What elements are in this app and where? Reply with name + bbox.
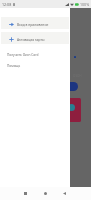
staticText: Вход в приложение bbox=[17, 22, 49, 26]
button[interactable]: Back bbox=[55, 187, 74, 200]
staticText: 12:08 bbox=[2, 2, 12, 7]
staticText: Получить Ozon Card bbox=[7, 53, 39, 57]
staticText: Активация карты bbox=[17, 37, 45, 41]
button[interactable]: Помощь bbox=[0, 61, 70, 71]
button[interactable]: Получить Ozon Card bbox=[0, 50, 70, 60]
button[interactable]: Активация карты bbox=[1, 32, 69, 44]
staticText: 100% bbox=[80, 2, 90, 7]
button[interactable]: Home bbox=[36, 187, 55, 200]
staticText: Помощь bbox=[7, 64, 21, 68]
button[interactable]: Recent apps bbox=[16, 187, 35, 200]
button[interactable]: Вход в приложение bbox=[1, 17, 69, 29]
